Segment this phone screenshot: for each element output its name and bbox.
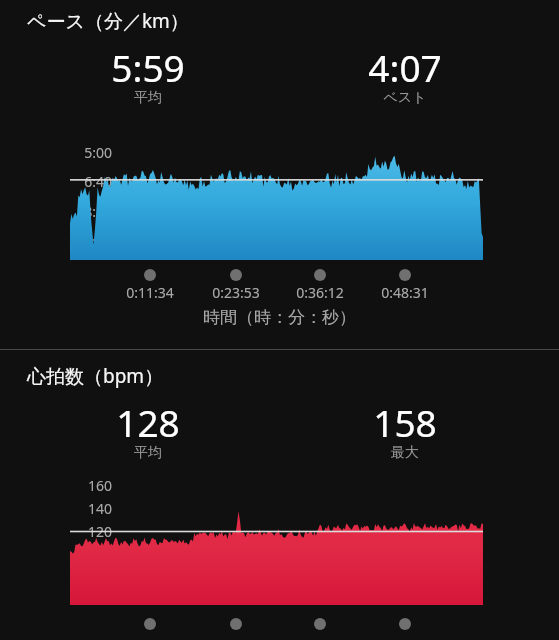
staticText: 158	[315, 397, 495, 447]
staticText: 最大	[315, 444, 495, 462]
staticText: 160	[50, 476, 112, 495]
staticText: 100	[50, 545, 112, 564]
staticText: ベスト	[315, 89, 495, 107]
staticText: 0:23:53	[191, 283, 281, 302]
staticText: 80	[50, 569, 112, 588]
staticText: 0:36:12	[275, 283, 365, 302]
staticText: 心拍数（bpm）	[27, 363, 164, 389]
staticText: 4:07	[315, 42, 495, 92]
button[interactable]: ペース（分／km）	[0, 0, 559, 349]
staticText: 平均	[58, 89, 238, 107]
staticText: 0:48:31	[360, 283, 450, 302]
staticText: 10:00	[50, 232, 112, 251]
staticText: ペース（分／km）	[27, 8, 189, 34]
button[interactable]: 心拍数（bpm）	[0, 350, 559, 640]
staticText: 5:00	[50, 143, 112, 162]
staticText: 5:59	[58, 42, 238, 92]
staticText: 0:11:34	[105, 283, 195, 302]
staticText: 120	[50, 522, 112, 541]
staticText: 平均	[58, 444, 238, 462]
staticText: 6:40	[50, 172, 112, 191]
staticText: 8:20	[50, 202, 112, 221]
staticText: 140	[50, 499, 112, 518]
staticText: 128	[58, 397, 238, 447]
staticText: 時間（時：分：秒）	[0, 307, 559, 328]
